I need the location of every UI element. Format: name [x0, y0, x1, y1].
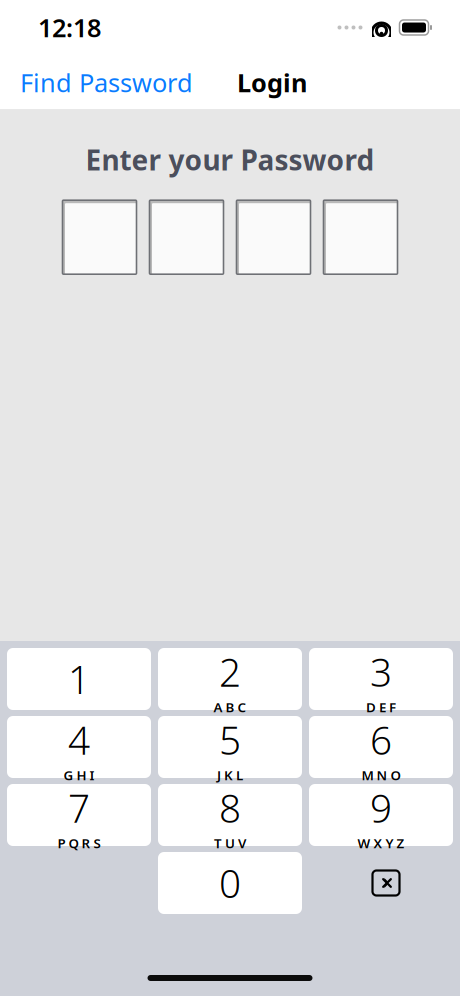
- staticText: Enter your Password: [85, 141, 374, 178]
- staticText: J K L: [217, 766, 243, 784]
- button[interactable]: 8: [158, 784, 302, 846]
- staticText: 12:18: [38, 11, 101, 44]
- button[interactable]: 5: [158, 716, 302, 778]
- staticText: 1: [68, 653, 90, 705]
- button[interactable]: 3: [309, 648, 453, 710]
- staticText: 9: [370, 782, 392, 833]
- staticText: D E F: [366, 698, 396, 716]
- staticText: 5: [219, 714, 241, 765]
- staticText: 0: [219, 857, 241, 909]
- staticText: A B C: [213, 698, 246, 716]
- staticText: M N O: [361, 766, 400, 784]
- button[interactable]: 2: [158, 648, 302, 710]
- staticText: 2: [219, 646, 241, 697]
- button[interactable]: 9: [309, 784, 453, 846]
- staticText: 8: [219, 782, 241, 833]
- button[interactable]: Find Password: [20, 58, 193, 107]
- staticText: 3: [370, 646, 392, 697]
- staticText: W X Y Z: [357, 834, 404, 852]
- staticText: T U V: [214, 834, 246, 852]
- staticText: 4: [68, 714, 90, 765]
- button[interactable]: 7: [7, 784, 151, 846]
- staticText: 7: [68, 782, 90, 833]
- staticText: Find Password: [20, 66, 193, 99]
- button[interactable]: Delete: [309, 852, 453, 914]
- staticText: G H I: [63, 766, 94, 784]
- button[interactable]: 6: [309, 716, 453, 778]
- button[interactable]: 4: [7, 716, 151, 778]
- button[interactable]: 1: [7, 648, 151, 710]
- staticText: P Q R S: [57, 834, 100, 852]
- staticText: 6: [370, 714, 392, 765]
- button[interactable]: 0: [158, 852, 302, 914]
- staticText: Login: [237, 66, 307, 99]
